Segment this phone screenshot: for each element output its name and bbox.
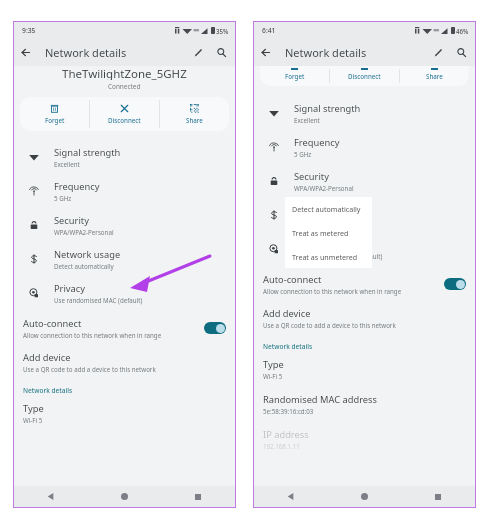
- button[interactable]: Forget: [260, 66, 329, 86]
- staticText: 6:41: [262, 26, 276, 35]
- button[interactable]: Signal strength: [14, 140, 235, 174]
- staticText: Treat as metered: [292, 228, 349, 238]
- staticText: Type: [263, 358, 284, 371]
- staticText: Security: [294, 170, 329, 183]
- staticText: Frequency: [294, 136, 340, 149]
- button[interactable]: Auto-connect: [444, 278, 466, 290]
- button[interactable]: Treat as metered: [285, 221, 372, 245]
- button[interactable]: Share: [400, 66, 469, 86]
- staticText: Auto-connect: [263, 273, 322, 286]
- staticText: Type: [23, 402, 44, 415]
- staticText: Forget: [45, 116, 65, 124]
- button[interactable]: Auto-connect: [204, 322, 226, 334]
- button[interactable]: Add device: [14, 349, 235, 375]
- button[interactable]: Back: [254, 41, 277, 64]
- staticText: 35%: [216, 27, 229, 35]
- staticText: 9:35: [22, 26, 36, 35]
- staticText: Excellent: [294, 116, 320, 124]
- staticText: Share: [426, 72, 443, 80]
- staticText: Allow connection to this network when in…: [23, 331, 162, 339]
- staticText: Network details: [23, 386, 73, 395]
- staticText: Connected: [108, 82, 141, 91]
- staticText: Randomised MAC address: [263, 393, 377, 406]
- staticText: 192.168.1.11: [263, 442, 300, 450]
- button[interactable]: Auto-connect: [14, 312, 235, 343]
- staticText: Network details: [45, 45, 127, 60]
- staticText: WPA/WPA2-Personal: [294, 184, 354, 192]
- staticText: Signal strength: [294, 102, 361, 115]
- staticText: Forget: [285, 72, 305, 80]
- button[interactable]: Network usage: [14, 242, 235, 276]
- staticText: Security: [54, 214, 89, 227]
- staticText: Use randomised MAC (default): [54, 296, 143, 304]
- staticText: Signal strength: [54, 146, 121, 159]
- staticText: Disconnect: [108, 116, 141, 124]
- staticText: Add device: [23, 351, 71, 364]
- staticText: WPA/WPA2-Personal: [54, 228, 114, 236]
- button[interactable]: Disconnect: [330, 66, 399, 86]
- button[interactable]: Detect automatically: [285, 197, 372, 221]
- staticText: Network details: [285, 45, 367, 60]
- staticText: Excellent: [54, 160, 80, 168]
- staticText: Detect automatically: [292, 204, 361, 214]
- staticText: Wi-Fi 5: [23, 416, 43, 424]
- button[interactable]: Home: [87, 486, 161, 507]
- staticText: IP address: [263, 428, 309, 441]
- button[interactable]: Recent apps: [161, 486, 235, 507]
- button[interactable]: Privacy: [14, 276, 235, 310]
- staticText: TheTwilightZone_5GHZ: [62, 66, 187, 80]
- staticText: Network usage: [54, 248, 121, 261]
- staticText: 46%: [456, 27, 469, 35]
- staticText: Share: [186, 116, 203, 124]
- button[interactable]: Frequency: [254, 130, 475, 164]
- button[interactable]: Search: [450, 41, 473, 64]
- button[interactable]: Home: [327, 486, 401, 507]
- staticText: Use randomised MAC (default): [294, 252, 383, 260]
- button[interactable]: Forget: [20, 97, 89, 131]
- staticText: Disconnect: [348, 72, 381, 80]
- staticText: Wi-Fi 5: [263, 372, 283, 380]
- staticText: Detect automatically: [54, 262, 114, 270]
- staticText: 5e:58:39:16:cd:03: [263, 407, 314, 415]
- staticText: Network details: [263, 342, 313, 351]
- button[interactable]: Back: [254, 486, 327, 507]
- button[interactable]: Network usage: [254, 198, 475, 232]
- button[interactable]: Privacy: [254, 232, 475, 266]
- staticText: 5 GHz: [294, 150, 312, 158]
- staticText: Add device: [263, 307, 311, 320]
- button[interactable]: Frequency: [14, 174, 235, 208]
- staticText: Use a QR code to add a device to this ne…: [263, 321, 396, 329]
- button[interactable]: Share: [160, 97, 229, 131]
- button[interactable]: Signal strength: [254, 96, 475, 130]
- button[interactable]: Back: [14, 486, 87, 507]
- button[interactable]: Type: [254, 356, 475, 382]
- staticText: Allow connection to this network when in…: [263, 287, 402, 295]
- button[interactable]: Security: [254, 164, 475, 198]
- button[interactable]: Auto-connect: [254, 268, 475, 299]
- staticText: Auto-connect: [23, 317, 82, 330]
- staticText: Treat as unmetered: [292, 252, 358, 262]
- button[interactable]: IP address: [254, 426, 475, 452]
- staticText: Network usage: [294, 204, 361, 217]
- button[interactable]: Randomised MAC address: [254, 391, 475, 417]
- staticText: Frequency: [54, 180, 100, 193]
- button[interactable]: Disconnect: [90, 97, 159, 131]
- staticText: Privacy: [54, 282, 86, 295]
- button[interactable]: Add device: [254, 305, 475, 331]
- button[interactable]: Security: [14, 208, 235, 242]
- button[interactable]: Back: [14, 41, 37, 64]
- button[interactable]: Search: [210, 41, 233, 64]
- button[interactable]: Edit: [427, 41, 450, 64]
- button[interactable]: Treat as unmetered: [285, 245, 372, 268]
- staticText: Use a QR code to add a device to this ne…: [23, 365, 156, 373]
- button[interactable]: Type: [14, 400, 235, 426]
- button[interactable]: Edit: [187, 41, 210, 64]
- staticText: 5 GHz: [54, 194, 72, 202]
- button[interactable]: Recent apps: [401, 486, 475, 507]
